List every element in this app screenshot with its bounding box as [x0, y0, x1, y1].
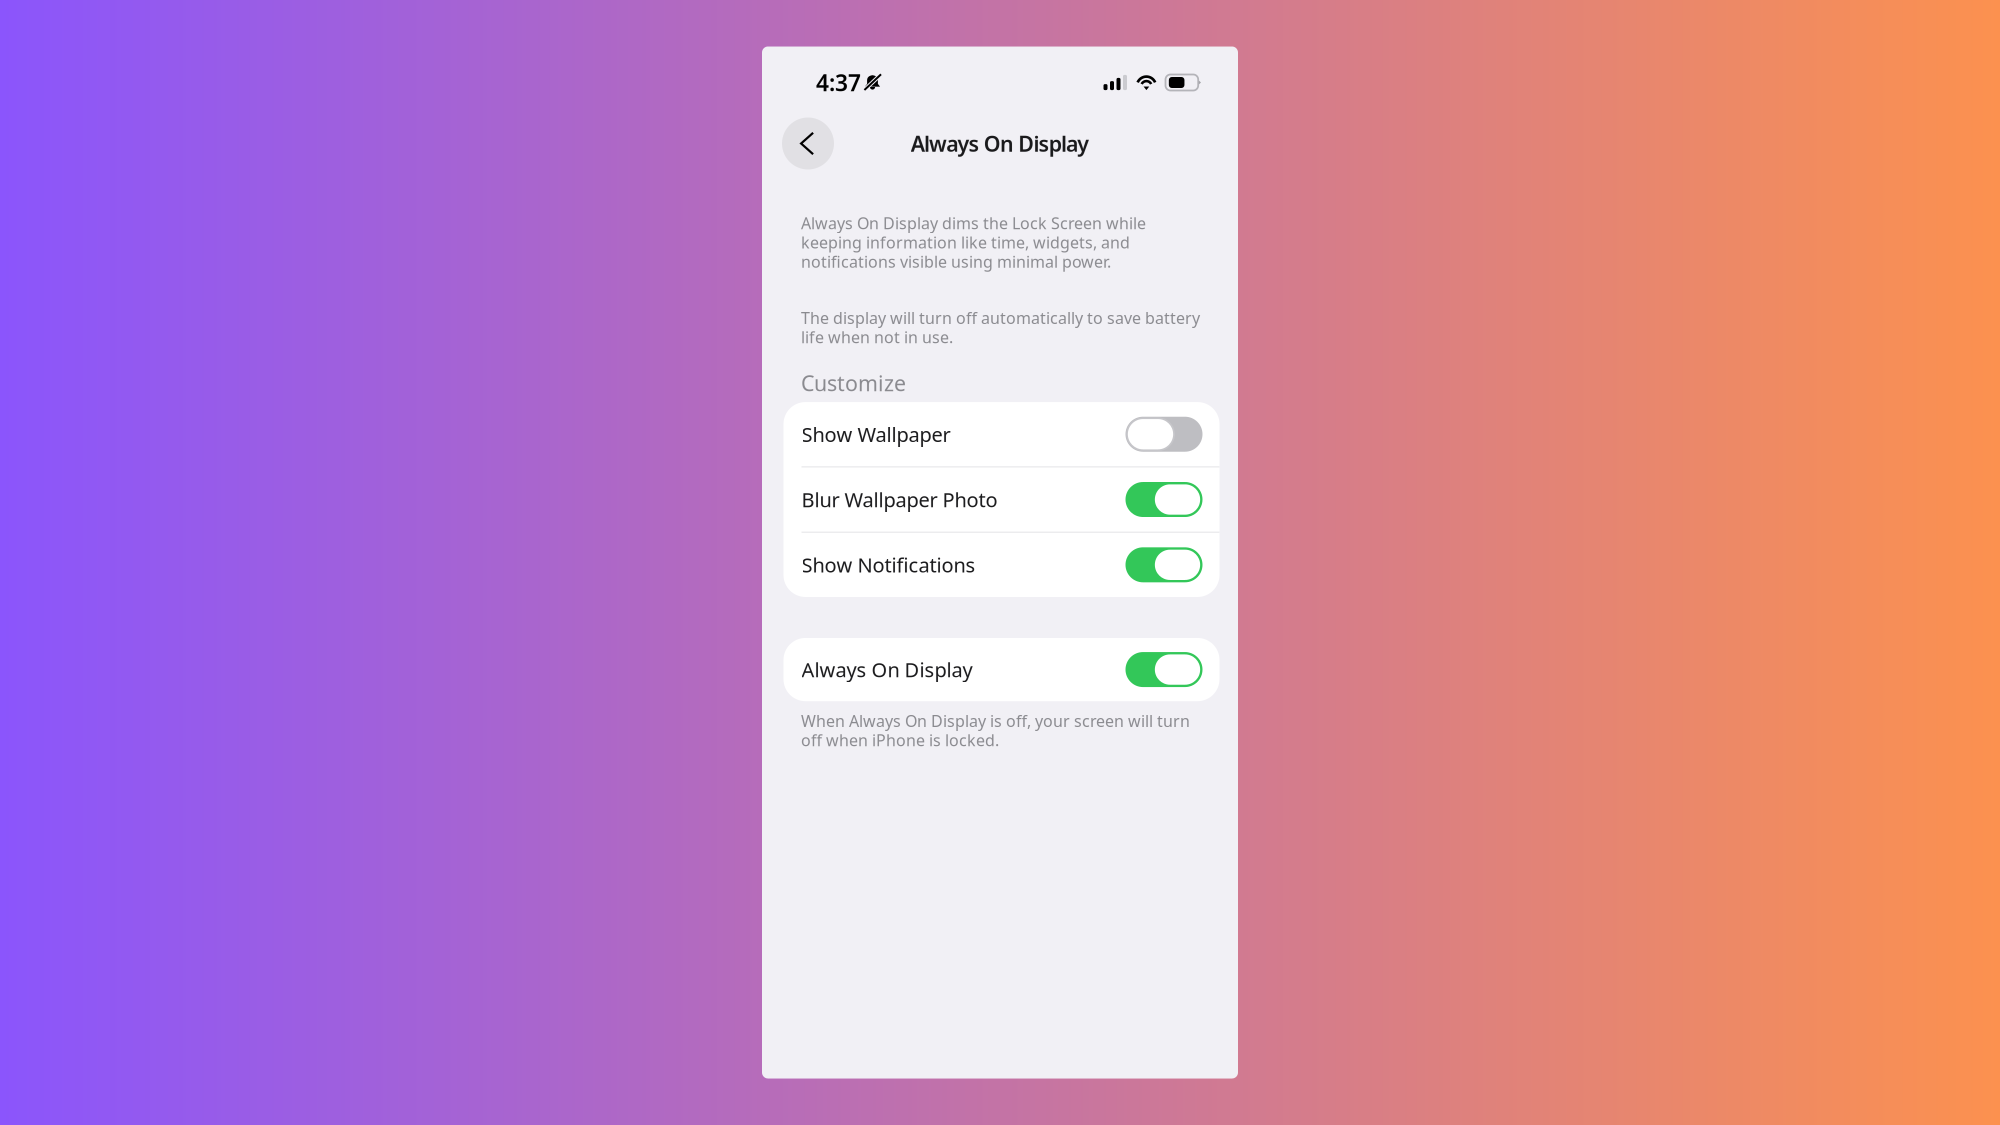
button[interactable]: Show Notifications — [783, 533, 1219, 597]
staticText: 4:37 — [816, 67, 861, 97]
staticText: When Always On Display is off, your scre… — [801, 710, 1190, 751]
staticText: The display will turn off automatically … — [801, 307, 1200, 348]
staticText: Always On Display dims the Lock Screen w… — [801, 212, 1146, 272]
staticText: Blur Wallpaper Photo — [801, 486, 997, 513]
staticText: Customize — [801, 369, 906, 397]
button[interactable]: Back — [782, 117, 834, 169]
staticText: Show Notifications — [801, 551, 975, 578]
button[interactable]: Show Wallpaper — [783, 402, 1219, 466]
staticText: Always On Display — [801, 656, 972, 683]
staticText: Show Wallpaper — [801, 421, 950, 447]
button[interactable]: Blur Wallpaper Photo — [783, 467, 1219, 532]
staticText: Always On Display — [911, 129, 1089, 158]
button[interactable]: Always On Display — [783, 638, 1219, 701]
